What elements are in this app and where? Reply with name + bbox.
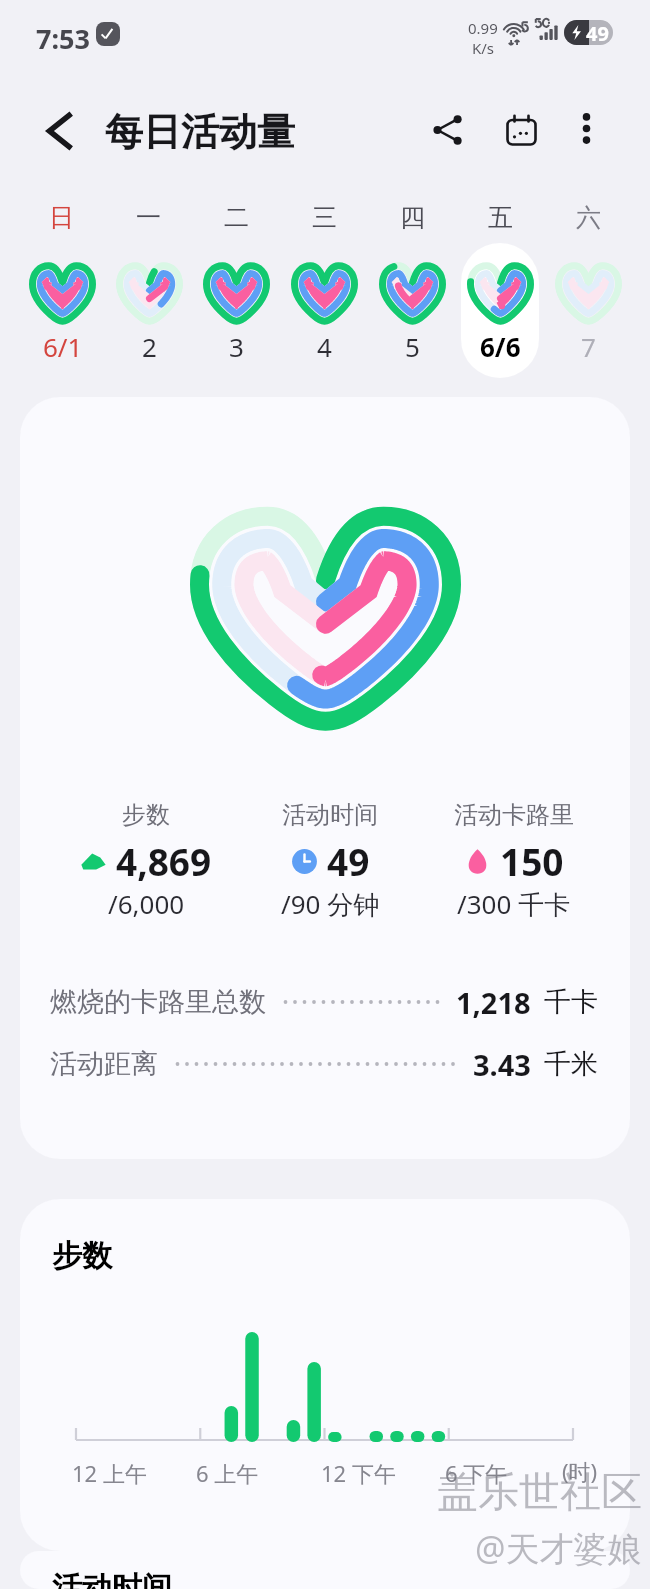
staticText: 12 下午 <box>321 1458 396 1486</box>
staticText: 活动时间 <box>282 800 378 830</box>
staticText: 5 <box>405 329 420 364</box>
staticText: 150 <box>500 836 564 886</box>
staticText: 千米 <box>544 1047 598 1081</box>
staticText: 步数 <box>52 1237 112 1275</box>
staticText: /300 千卡 <box>457 886 571 922</box>
staticText: 活动时间 <box>52 1569 172 1589</box>
staticText: 每日活动量 <box>105 108 295 156</box>
button[interactable]: 四 <box>368 198 456 378</box>
staticText: 二 <box>224 202 249 233</box>
staticText: 2 <box>142 329 157 364</box>
staticText: 49 <box>327 836 370 886</box>
staticText: 活动距离 <box>50 1047 158 1081</box>
staticText: 4,869 <box>116 836 212 886</box>
staticText: 7 <box>581 329 596 364</box>
button[interactable]: 燃烧的卡路里总数 <box>50 982 598 1022</box>
button[interactable]: 步数 <box>20 1199 630 1551</box>
staticText: 日 <box>49 202 74 233</box>
staticText: 三 <box>312 202 337 233</box>
staticText: 7:53 <box>36 20 90 57</box>
staticText: 4 <box>317 329 332 364</box>
staticText: /6,000 <box>108 886 185 921</box>
button[interactable]: 日 <box>18 198 105 378</box>
button[interactable]: 活动时间 <box>20 1551 630 1589</box>
button[interactable]: 五 <box>456 198 544 378</box>
staticText: 燃烧的卡路里总数 <box>50 985 266 1019</box>
button[interactable]: More options <box>557 99 615 157</box>
staticText: /90 分钟 <box>281 886 380 922</box>
staticText: 49 <box>586 20 609 45</box>
staticText: 3.43 <box>473 1045 531 1084</box>
staticText: 6 下午 <box>445 1458 508 1486</box>
staticText: 0.99 <box>468 18 498 38</box>
staticText: 6/1 <box>43 329 83 364</box>
button[interactable]: 一 <box>105 198 192 378</box>
staticText: 六 <box>576 202 601 233</box>
button[interactable]: 六 <box>544 198 632 378</box>
staticText: 五 <box>488 202 513 233</box>
button[interactable]: 二 <box>192 198 280 378</box>
staticText: 盖乐世社区 <box>437 1467 642 1519</box>
staticText: (时) <box>562 1456 598 1484</box>
button[interactable]: Calendar <box>487 96 555 164</box>
button[interactable]: Back <box>28 100 90 162</box>
staticText: 3 <box>229 329 244 364</box>
staticText: 6/6 <box>480 329 521 364</box>
staticText: 四 <box>400 202 425 233</box>
staticText: 千卡 <box>544 985 598 1019</box>
staticText: 6 上午 <box>196 1458 259 1486</box>
button[interactable]: Share <box>416 98 480 162</box>
staticText: K/s <box>472 38 495 58</box>
staticText: 活动卡路里 <box>454 800 574 830</box>
staticText: 1,218 <box>456 983 531 1022</box>
button[interactable]: 步数 <box>20 397 630 1159</box>
button[interactable]: 活动距离 <box>50 1044 598 1084</box>
staticText: @天才婆娘 <box>475 1525 642 1571</box>
staticText: 12 上午 <box>72 1458 147 1486</box>
button[interactable]: 三 <box>280 198 368 378</box>
staticText: 一 <box>136 202 161 233</box>
staticText: 步数 <box>122 800 170 830</box>
